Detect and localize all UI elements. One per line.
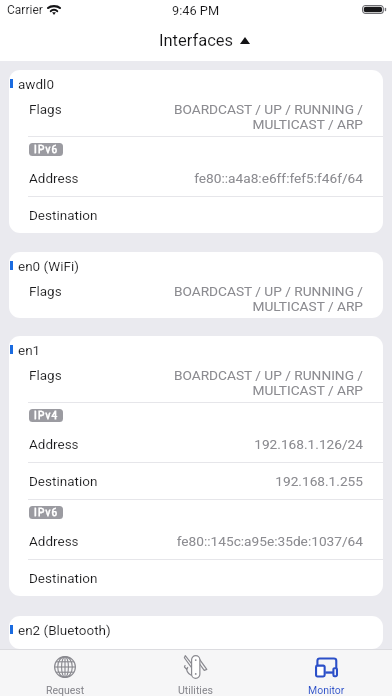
button[interactable]: Address [9,426,383,462]
staticText: en0 (WiFi) [18,258,79,274]
staticText: fe80::a4a8:e6ff:fef5:f46f/64 [194,170,363,186]
staticText: Flags [29,283,62,299]
staticText: IPv4 [34,410,59,422]
staticText: IPv6 [34,507,59,519]
staticText: Carrier [7,3,43,17]
staticText: BOARDCAST / UP / RUNNING / MULTICAST / A… [173,367,363,398]
staticText: 192.168.1.255 [275,473,363,489]
button[interactable]: en2 (Bluetooth) [9,616,383,643]
staticText: 9:46 PM [172,3,220,18]
button[interactable]: Address [9,160,383,196]
staticText: awdl0 [18,76,54,92]
staticText: IPv6 [34,144,59,156]
staticText: en2 (Bluetooth) [18,622,111,638]
button[interactable]: Flags [9,97,383,136]
staticText: Destination [29,570,98,586]
other: Battery [362,5,387,14]
staticText: Monitor [308,684,345,696]
button[interactable]: Destination [9,197,383,233]
staticText: Destination [29,207,98,223]
button[interactable]: Monitor [261,650,392,696]
staticText: BOARDCAST / UP / RUNNING / MULTICAST / A… [173,283,363,314]
staticText: Interfaces [159,31,234,50]
staticText: Request [46,684,85,696]
button[interactable]: en0 (WiFi) [9,252,383,279]
staticText: Address [29,436,79,452]
button[interactable]: Flags [9,279,383,318]
staticText: Address [29,170,79,186]
staticText: Utilities [178,684,213,696]
button[interactable]: Address [9,523,383,559]
button[interactable]: Destination [9,560,383,596]
button[interactable]: awdl0 [9,70,383,97]
button[interactable]: Utilities [130,650,261,696]
button[interactable]: Request [0,650,130,696]
staticText: fe80::145c:a95e:35de:1037/64 [176,533,363,549]
other: Wi-Fi [47,5,61,15]
staticText: BOARDCAST / UP / RUNNING / MULTICAST / A… [173,101,363,132]
staticText: Destination [29,473,98,489]
staticText: 192.168.1.126/24 [254,436,363,452]
staticText: Flags [29,367,62,383]
button[interactable]: Interfaces [159,31,234,50]
staticText: Flags [29,101,62,117]
button[interactable]: Flags [9,363,383,402]
staticText: en1 [18,342,41,358]
staticText: Address [29,533,79,549]
button[interactable]: en1 [9,336,383,363]
button[interactable]: Destination [9,463,383,499]
